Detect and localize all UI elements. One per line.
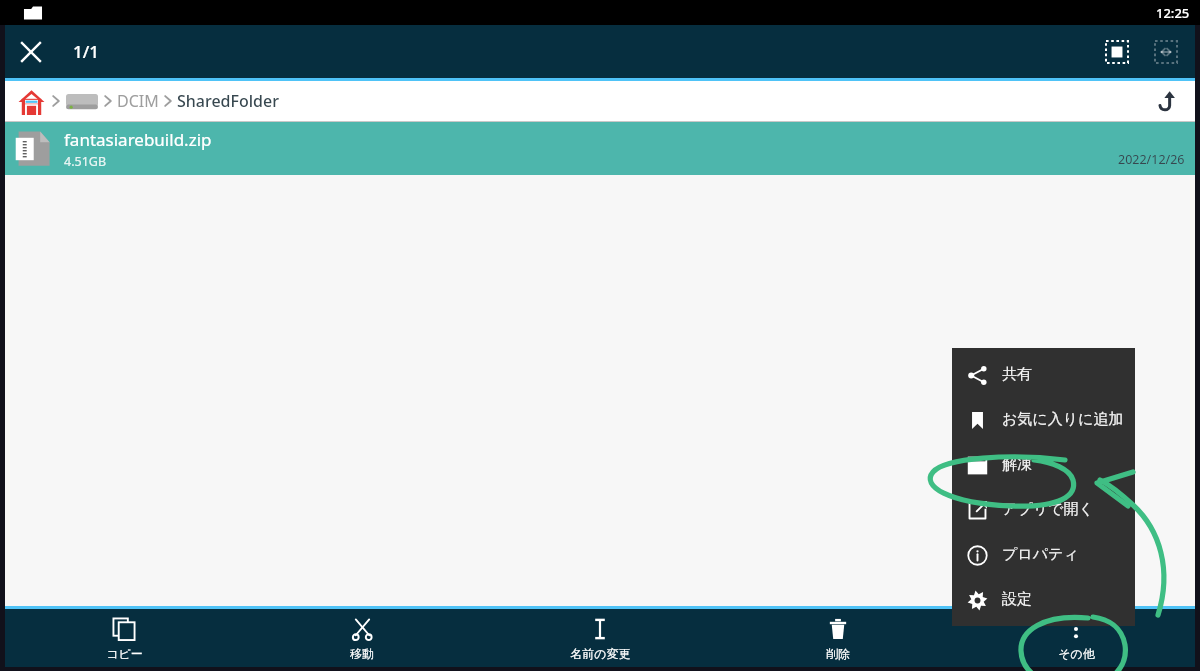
staticText: 削除 xyxy=(826,646,850,661)
staticText: 解凍 xyxy=(1002,455,1032,474)
staticText: 2022/12/26 xyxy=(1118,151,1185,168)
staticText: お気に入りに追加 xyxy=(1002,410,1124,429)
button[interactable]: お気に入りに追加 xyxy=(952,397,1135,442)
staticText: その他 xyxy=(1058,646,1095,661)
button[interactable]: Go to parent folder xyxy=(1149,83,1185,119)
button[interactable]: 共有 xyxy=(952,352,1135,397)
button[interactable]: SharedFolder xyxy=(177,90,279,112)
staticText: 名前の変更 xyxy=(570,646,631,661)
button[interactable]: Home xyxy=(15,85,47,117)
staticText: fantasiarebuild.zip xyxy=(64,128,212,151)
button[interactable]: 設定 xyxy=(952,577,1135,622)
button[interactable]: Select all xyxy=(1091,26,1143,78)
button[interactable]: アプリで開く xyxy=(952,487,1135,532)
button[interactable]: Select range xyxy=(1143,26,1189,78)
staticText: 共有 xyxy=(1002,365,1032,384)
staticText: アプリで開く xyxy=(1002,500,1094,519)
button[interactable]: 移動 xyxy=(243,609,481,667)
staticText: 移動 xyxy=(350,646,374,661)
button[interactable]: DCIM xyxy=(117,90,159,112)
button[interactable]: 名前の変更 xyxy=(481,609,719,667)
button[interactable]: その他 xyxy=(957,609,1195,667)
staticText: 設定 xyxy=(1002,590,1032,609)
staticText: 12:25 xyxy=(1156,4,1190,22)
button[interactable]: fantasiarebuild.zip xyxy=(5,122,1195,175)
staticText: プロパティ xyxy=(1002,545,1079,564)
button[interactable]: コピー xyxy=(5,609,243,667)
staticText: 4.51GB xyxy=(64,153,107,170)
button[interactable]: 削除 xyxy=(719,609,957,667)
button[interactable]: 解凍 xyxy=(952,442,1135,487)
staticText: コピー xyxy=(106,646,143,661)
staticText: 1/1 xyxy=(73,40,99,63)
button[interactable]: Close selection xyxy=(5,26,57,78)
button[interactable]: Internal storage xyxy=(65,88,99,114)
button[interactable]: プロパティ xyxy=(952,532,1135,577)
